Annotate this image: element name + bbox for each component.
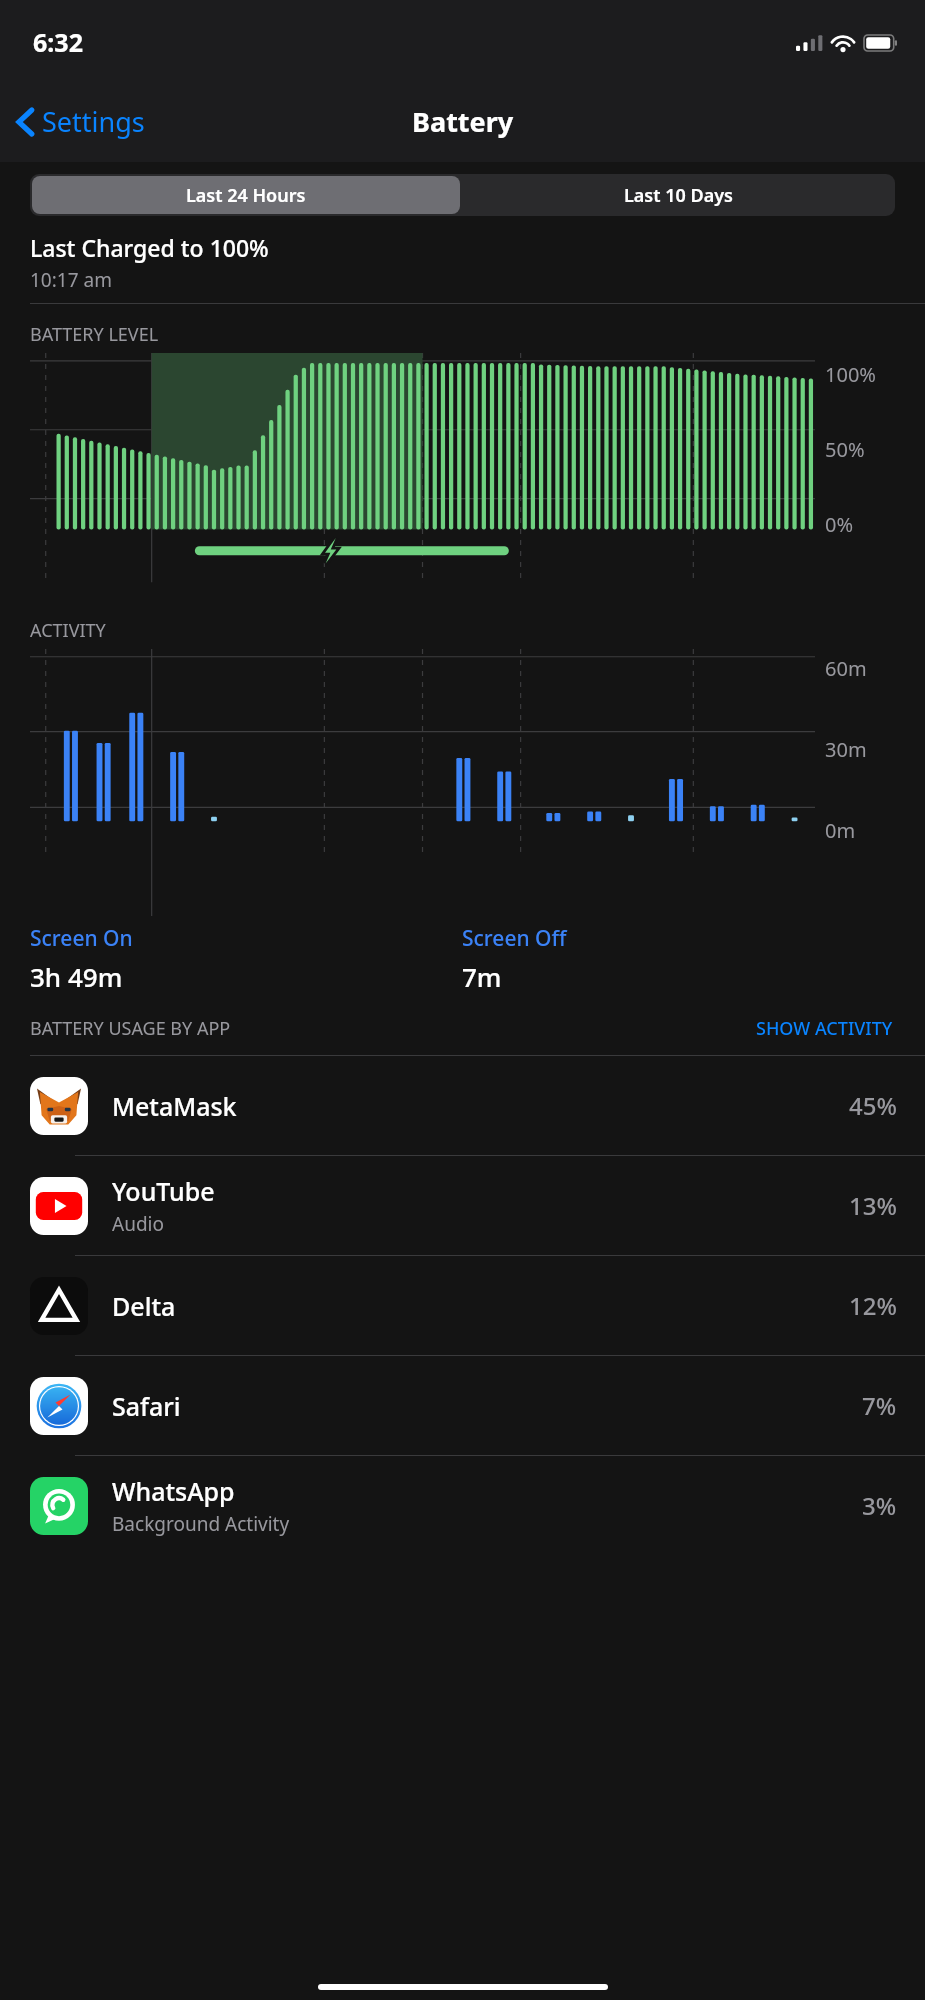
staticText: 50% [825,436,865,463]
staticText: 0% [825,511,854,538]
staticText: YouTube [112,1174,215,1208]
staticText: Battery [412,103,514,140]
staticText: 12% [849,1289,897,1322]
button[interactable]: WhatsApp [0,1456,925,1555]
staticText: Settings [42,103,145,140]
staticText: Screen On [30,924,133,953]
staticText: 30m [825,736,867,763]
staticText: Safari [112,1389,181,1423]
button[interactable]: YouTube [0,1156,925,1255]
staticText: 45% [849,1089,897,1122]
staticText: 10:17 am [30,267,112,293]
staticText: Background Activity [112,1511,290,1537]
staticText: 13% [849,1189,897,1222]
staticText: 0m [825,817,856,844]
button[interactable]: Safari [0,1356,925,1455]
staticText: SHOW ACTIVITY [756,1016,893,1041]
button[interactable]: Settings [0,97,155,146]
staticText: 100% [825,361,876,388]
staticText: BATTERY USAGE BY APP [30,1016,752,1041]
button[interactable]: MetaMask [0,1056,925,1155]
staticText: Audio [112,1211,164,1237]
staticText: 7m [462,959,502,994]
button[interactable]: SHOW ACTIVITY [752,1012,897,1045]
staticText: 6:32 [33,25,83,59]
staticText: 7% [862,1389,897,1422]
staticText: 3h 49m [30,959,123,994]
button[interactable]: Last 24 Hours [32,176,460,214]
staticText: BATTERY LEVEL [30,322,159,347]
staticText: Screen Off [462,924,567,953]
staticText: MetaMask [112,1089,237,1123]
staticText: Last Charged to 100% [30,232,269,263]
staticText: Last 24 Hours [186,183,306,208]
staticText: ACTIVITY [30,618,106,643]
staticText: Last 10 Days [624,183,733,208]
staticText: 60m [825,655,867,682]
staticText: 3% [862,1489,897,1522]
staticText: WhatsApp [112,1474,235,1508]
button[interactable]: Delta [0,1256,925,1355]
staticText: Delta [112,1289,176,1323]
button[interactable]: Last 10 Days [462,174,895,216]
